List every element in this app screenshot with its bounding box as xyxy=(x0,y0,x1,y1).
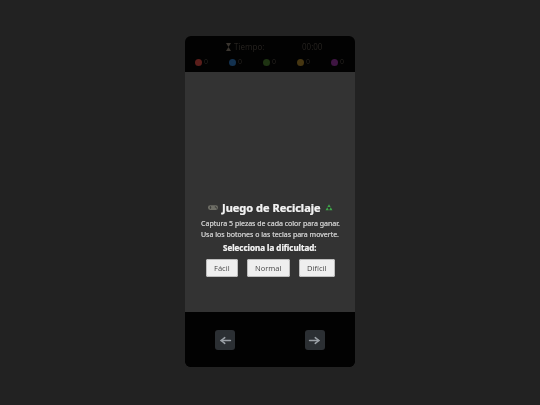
staticText: 0 xyxy=(272,57,277,67)
staticText: Usa los botones o las teclas para movert… xyxy=(201,230,339,240)
staticText: Normal xyxy=(255,263,282,273)
staticText: 0 xyxy=(238,57,243,67)
button[interactable]: Fácil xyxy=(206,259,238,277)
staticText: 0 xyxy=(306,57,311,67)
button[interactable]: Mover a la derecha xyxy=(305,330,325,350)
staticText: 00:00 xyxy=(302,41,323,52)
staticText: 0 xyxy=(204,57,209,67)
staticText: Captura 5 piezas de cada color para gana… xyxy=(201,219,340,229)
staticText: Juego de Reciclaje xyxy=(222,200,321,215)
staticText: Tiempo: xyxy=(234,41,265,52)
button[interactable]: Difícil xyxy=(299,259,335,277)
staticText: Fácil xyxy=(214,263,230,273)
button[interactable]: Mover a la izquierda xyxy=(215,330,235,350)
staticText: 0 xyxy=(340,57,345,67)
staticText: Selecciona la dificultad: xyxy=(223,242,317,253)
staticText: Difícil xyxy=(307,263,327,273)
button[interactable]: Normal xyxy=(247,259,290,277)
